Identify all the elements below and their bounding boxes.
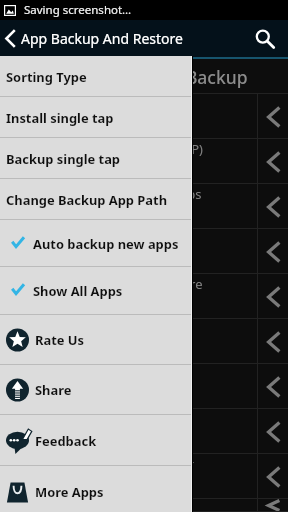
button[interactable]: Install single tap: [0, 97, 191, 138]
staticText: Rate Us: [35, 331, 85, 349]
button[interactable]: Backup single tap: [0, 138, 191, 179]
button[interactable]: Search: [242, 20, 288, 57]
staticText: Saving screenshot…: [24, 2, 132, 18]
staticText: Android WebView (BETAP): [46, 140, 203, 158]
button[interactable]: Local Backup: [0, 59, 288, 93]
button[interactable]: More Apps: [0, 466, 191, 512]
button[interactable]: Rate Us: [0, 315, 191, 365]
staticText: 5.2 MB: [46, 115, 79, 129]
button[interactable]: AccuWeather: [0, 94, 288, 139]
staticText: 8.3 MB: [46, 475, 79, 489]
button[interactable]: Clock: [0, 409, 288, 454]
button[interactable]: Navigate up: [0, 20, 20, 57]
staticText: Install single tap: [6, 109, 114, 127]
button[interactable]: Share: [0, 365, 191, 415]
staticText: Calculator: [46, 230, 108, 248]
button[interactable]: Camera: [0, 319, 288, 364]
staticText: Change Backup App Path: [6, 191, 168, 209]
staticText: Camera: [46, 320, 94, 338]
staticText: Clock: [46, 410, 79, 428]
button[interactable]: Change Backup App Path: [0, 179, 191, 220]
staticText: Auto backup new apps: [33, 235, 179, 253]
button[interactable]: Calendar Google Ca Store: [0, 274, 288, 319]
button[interactable]: Downloads: [0, 499, 288, 512]
button[interactable]: Auto backup new apps: [0, 220, 191, 267]
staticText: 32.4 MB: [46, 160, 85, 174]
staticText: AccuWeather: [46, 95, 127, 113]
button[interactable]: Calculator: [0, 229, 288, 274]
staticText: More Apps: [35, 483, 104, 501]
staticText: 64.2 MB: [46, 385, 85, 399]
staticText: 2.6 MB: [46, 430, 79, 444]
button[interactable]: Android WebView (BETAP): [0, 139, 288, 184]
button[interactable]: Backup and Restore Apps: [0, 184, 288, 229]
staticText: 1.4 MB: [46, 295, 79, 309]
button[interactable]: Chrome: [0, 364, 288, 409]
staticText: App Backup And Restore: [21, 29, 242, 48]
staticText: Backup single tap: [6, 150, 121, 168]
staticText: 12.8 MB: [46, 340, 85, 354]
button[interactable]: Sorting Type: [0, 56, 191, 97]
staticText: Calendar Google Ca Store: [46, 275, 203, 293]
button[interactable]: Feedback: [0, 415, 191, 466]
staticText: Share: [35, 381, 72, 399]
staticText: Local Backup: [138, 65, 248, 89]
staticText: Show All Apps: [33, 282, 123, 300]
staticText: Backup and Restore Apps: [46, 185, 202, 203]
staticText: Feedback: [35, 432, 97, 450]
button[interactable]: Show All Apps: [0, 267, 191, 315]
button[interactable]: Contacts and Dialer Stor: [0, 454, 288, 499]
staticText: Sorting Type: [6, 68, 87, 86]
staticText: Contacts and Dialer Stor: [46, 455, 194, 473]
